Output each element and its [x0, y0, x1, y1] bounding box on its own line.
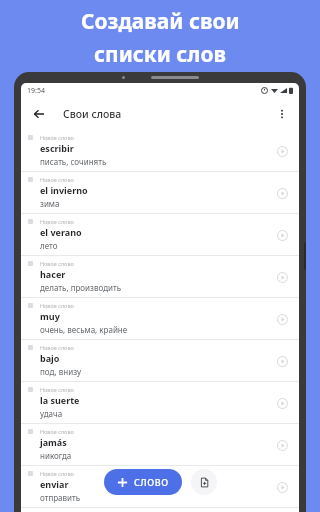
- staticText: escribir: [40, 142, 74, 154]
- button[interactable]: Воспроизвести: [272, 141, 292, 161]
- button[interactable]: Воспроизвести: [272, 435, 292, 455]
- button[interactable]: Новое слово: [21, 214, 299, 255]
- staticText: никогда: [40, 450, 72, 461]
- staticText: muy: [40, 310, 60, 322]
- button[interactable]: Воспроизвести: [272, 225, 292, 245]
- staticText: 19:54: [27, 86, 45, 96]
- staticText: Создавай свои: [81, 7, 240, 36]
- button[interactable]: Новое слово: [21, 424, 299, 465]
- staticText: hacer: [40, 268, 66, 280]
- button[interactable]: Ещё: [270, 102, 294, 126]
- button[interactable]: Воспроизвести: [272, 309, 292, 329]
- button[interactable]: Воспроизвести: [272, 393, 292, 413]
- staticText: Новое слово: [40, 176, 74, 183]
- staticText: под, внизу: [40, 366, 82, 377]
- staticText: удача: [40, 408, 63, 419]
- staticText: bajo: [40, 352, 60, 364]
- button[interactable]: СЛОВО: [104, 469, 182, 495]
- staticText: Новое слово: [40, 386, 74, 393]
- button[interactable]: Воспроизвести: [272, 351, 292, 371]
- button[interactable]: Новое слово: [21, 172, 299, 213]
- staticText: la suerte: [40, 394, 80, 406]
- staticText: лето: [40, 240, 58, 251]
- staticText: Новое слово: [40, 134, 74, 141]
- staticText: отправить: [40, 492, 81, 503]
- button[interactable]: Новое слово: [21, 382, 299, 423]
- staticText: Новое слово: [40, 260, 74, 267]
- staticText: el invierno: [40, 184, 88, 196]
- staticText: СЛОВО: [134, 476, 169, 488]
- staticText: очень, весьма, крайне: [40, 324, 128, 335]
- staticText: Новое слово: [40, 344, 74, 351]
- staticText: el verano: [40, 226, 82, 238]
- button[interactable]: Воспроизвести: [272, 477, 292, 497]
- button[interactable]: Новое слово: [21, 130, 299, 171]
- button[interactable]: Воспроизвести: [272, 267, 292, 287]
- staticText: делать, производить: [40, 282, 122, 293]
- button[interactable]: Новое слово: [21, 340, 299, 381]
- staticText: Новое слово: [40, 302, 74, 309]
- button[interactable]: Новое слово: [21, 298, 299, 339]
- button[interactable]: Новое слово: [21, 466, 299, 507]
- staticText: зима: [40, 198, 60, 209]
- staticText: Свои слова: [63, 107, 122, 121]
- staticText: писать, сочинять: [40, 156, 107, 167]
- staticText: списки слов: [94, 40, 227, 69]
- button[interactable]: Новое слово: [21, 256, 299, 297]
- staticText: jamás: [40, 436, 67, 448]
- staticText: Новое слово: [40, 470, 74, 477]
- staticText: Новое слово: [40, 218, 74, 225]
- button[interactable]: Новый список: [191, 469, 217, 495]
- button[interactable]: Назад: [27, 102, 51, 126]
- button[interactable]: Воспроизвести: [272, 183, 292, 203]
- staticText: enviar: [40, 478, 69, 490]
- staticText: Новое слово: [40, 428, 74, 435]
